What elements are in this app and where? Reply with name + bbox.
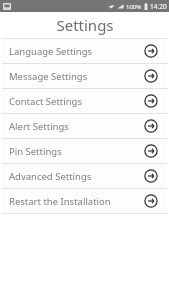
staticText: Settings: [56, 15, 114, 35]
other: Open Advanced Settings: [144, 169, 158, 183]
button[interactable]: Contact Settings: [2, 89, 167, 113]
button[interactable]: Language Settings: [2, 39, 167, 63]
button[interactable]: Advanced Settings: [2, 164, 167, 188]
staticText: 100%: [126, 3, 142, 11]
staticText: Contact Settings: [9, 95, 144, 108]
staticText: Advanced Settings: [9, 170, 144, 183]
staticText: Restart the Installation: [9, 195, 144, 208]
button[interactable]: Alert Settings: [2, 114, 167, 138]
other: Open Restart the Installation: [144, 194, 158, 208]
other: Open Message Settings: [144, 69, 158, 83]
button[interactable]: Message Settings: [2, 64, 167, 88]
other: Open Pin Settings: [144, 144, 158, 158]
other: Open Language Settings: [144, 44, 158, 58]
staticText: Pin Settings: [9, 145, 144, 158]
staticText: Alert Settings: [9, 120, 144, 133]
staticText: Language Settings: [9, 45, 144, 58]
button[interactable]: Restart the Installation: [2, 189, 167, 213]
button[interactable]: Pin Settings: [2, 139, 167, 163]
other: Open Alert Settings: [144, 119, 158, 133]
other: Open Contact Settings: [144, 94, 158, 108]
staticText: 14:20: [150, 2, 167, 11]
staticText: Message Settings: [9, 70, 144, 83]
